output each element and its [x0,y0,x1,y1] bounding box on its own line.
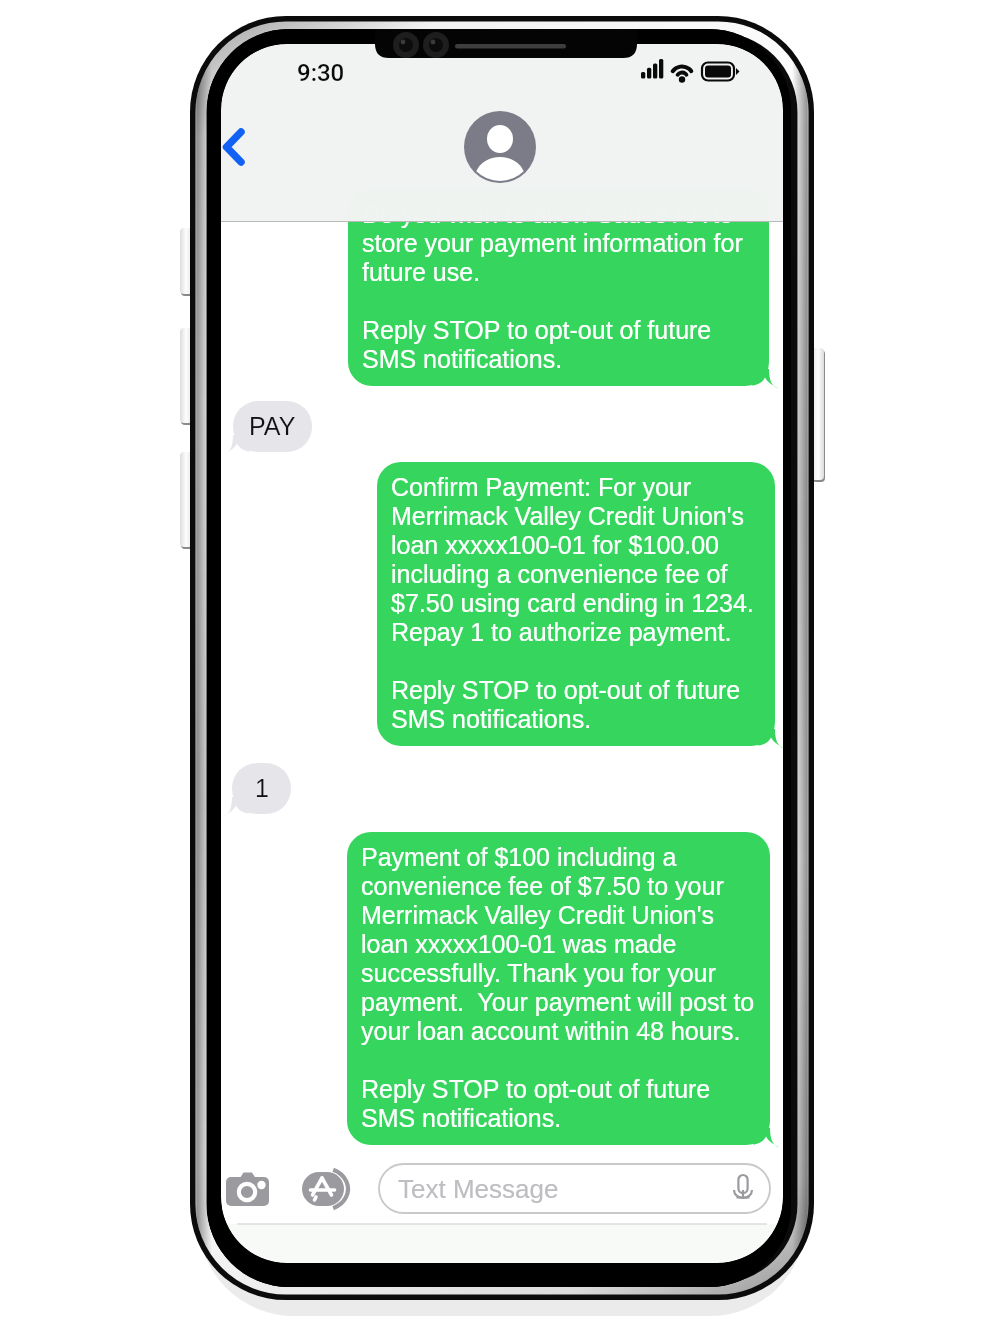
staticText: Payment of $100 including a convenience … [361,843,756,1132]
button[interactable]: Camera [240,1158,296,1216]
button[interactable]: 1 [223,763,291,814]
button[interactable]: Do you wish to allow Sauce AA to store y… [348,189,778,386]
button[interactable]: Back [221,110,289,184]
staticText: PAY [249,412,296,440]
staticText: Confirm Payment: For your Merrimack Vall… [391,473,761,733]
button[interactable]: Confirm Payment: For your Merrimack Vall… [377,462,783,746]
button[interactable]: Contact profile [464,111,536,183]
button[interactable]: PAY [224,401,312,452]
button[interactable]: Payment of $100 including a convenience … [347,832,779,1145]
button[interactable] [378,1163,763,1212]
staticText: 9:30 [297,59,345,87]
staticText: 1 [255,774,269,802]
staticText: Text Message [398,1174,559,1203]
button[interactable]: App Store [303,1158,359,1216]
staticText: Do you wish to allow Sauce AA to store y… [362,200,755,373]
